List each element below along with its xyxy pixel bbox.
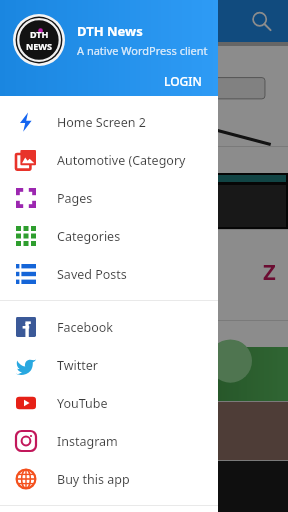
staticText: Saved Posts <box>57 266 127 283</box>
staticText: …SOs to not block DD Sports <box>4 334 117 345</box>
button[interactable]: Categories <box>0 217 218 255</box>
button[interactable]: Home Screen 2 <box>0 103 218 141</box>
staticText: Twitter <box>57 357 98 374</box>
staticText: NEWS <box>26 40 53 52</box>
button[interactable]: LOGIN <box>154 68 212 94</box>
staticText: …l Zee Annale Counci <box>4 232 89 243</box>
button[interactable]: Pages <box>0 179 218 217</box>
button[interactable]: Saved Posts <box>0 255 218 293</box>
button[interactable]: YouTube <box>0 384 218 422</box>
staticText: …as issued an advisory for <box>4 323 110 334</box>
staticText: …s On DD Freedish <box>4 243 79 254</box>
button[interactable]: Automotive (Category Item) <box>0 141 218 179</box>
staticText: NDvAUS <box>3 357 45 371</box>
button[interactable]: Instagram <box>0 422 218 460</box>
staticText: Automotive (Category Item) <box>57 152 218 169</box>
staticText: Z <box>263 256 276 286</box>
staticText: Facebook <box>57 319 114 336</box>
staticText: h Preview <box>3 371 47 383</box>
staticText: Categories <box>57 228 121 245</box>
button[interactable]: Buy this app <box>0 460 218 498</box>
staticText: DTH News <box>77 22 143 40</box>
staticText: KADAK HAI BO <box>122 498 166 506</box>
staticText: A native WordPress client <box>77 43 208 58</box>
staticText: SPORTS <box>5 395 39 401</box>
staticText: Buy this app <box>57 471 130 488</box>
staticText: …uide (EPG) Service <box>4 160 82 171</box>
staticText: YouTube <box>57 395 108 412</box>
staticText: …tarted There Electro <box>4 149 91 160</box>
staticText: Pages <box>57 190 93 207</box>
staticText: BA <box>126 469 162 504</box>
staticText: LOGIN <box>164 73 202 89</box>
button[interactable]: Twitter <box>0 346 218 384</box>
staticText: Home Screen 2 <box>57 114 146 131</box>
button[interactable]: Search <box>250 10 272 32</box>
staticText: DTH <box>30 28 49 40</box>
button[interactable]: Facebook <box>0 308 218 346</box>
staticText: Instagram <box>57 433 118 450</box>
staticText: rishtey <box>6 300 59 320</box>
